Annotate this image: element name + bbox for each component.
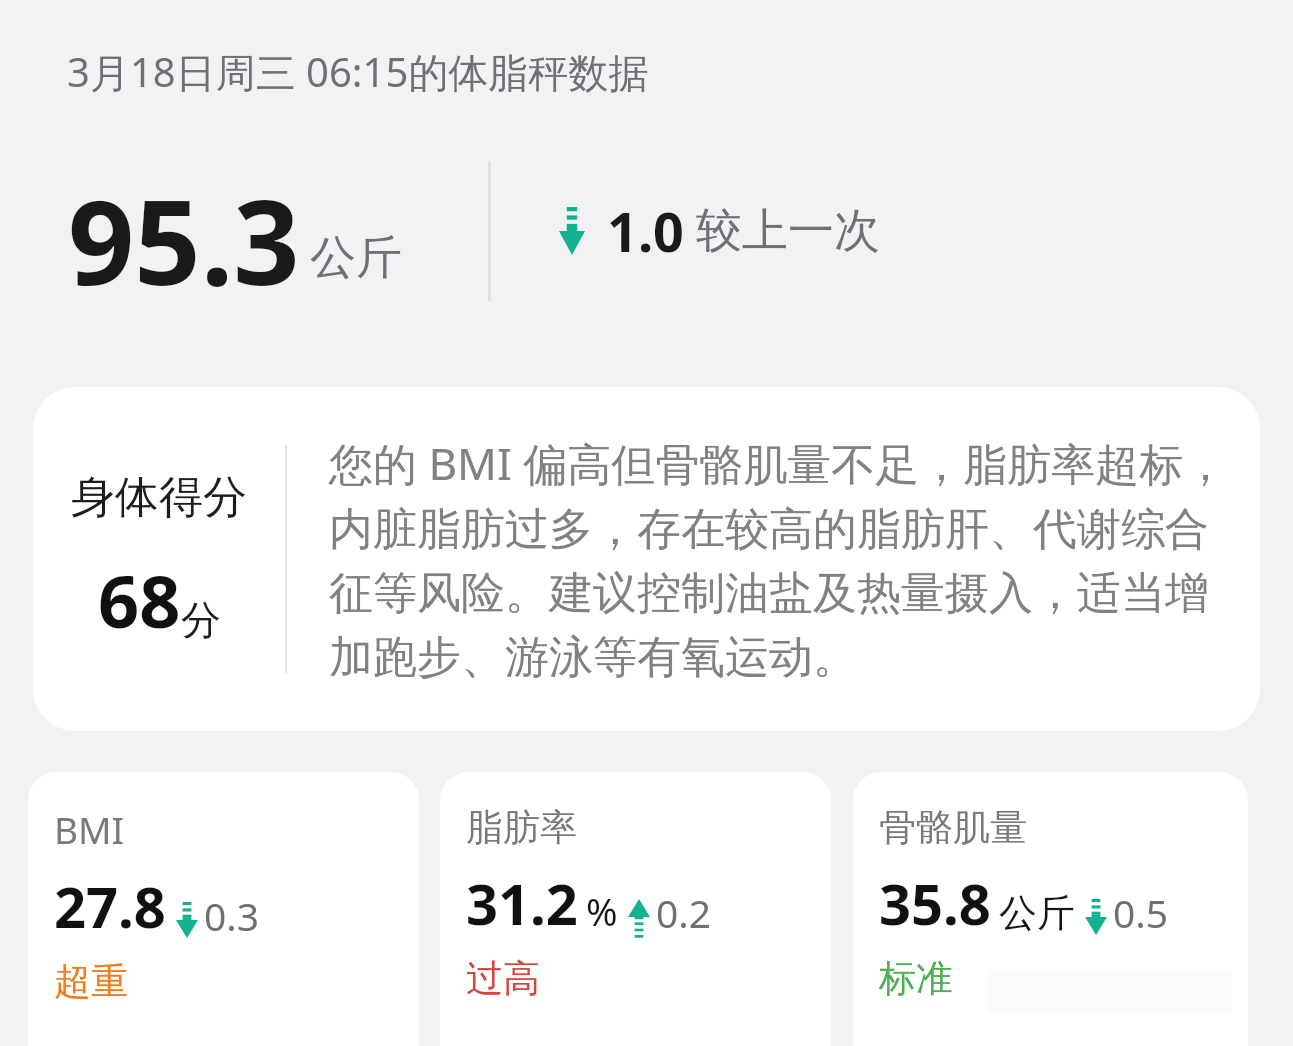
staticText: 较上一次 [696, 202, 880, 260]
staticText: 超重 [54, 958, 128, 1005]
staticText: 68 [98, 551, 181, 649]
staticText: 3月18日周三 06:15的体脂秤数据 [67, 44, 649, 99]
staticText: 0.5 [1113, 886, 1169, 939]
staticText: 公斤 [310, 229, 402, 287]
staticText: 骨骼肌量 [879, 804, 1027, 851]
staticText: 身体得分 [71, 470, 247, 525]
staticText: 35.8 [879, 865, 991, 941]
button[interactable]: 95.3 [68, 161, 402, 301]
staticText: % [586, 885, 618, 937]
staticText: 标准 [879, 955, 953, 1002]
staticText: 脂肪率 [466, 804, 577, 851]
button[interactable]: BMI [28, 772, 419, 1046]
button[interactable]: 脂肪率 [440, 772, 831, 1046]
staticText: 95.3 [68, 161, 300, 301]
button[interactable]: 1.0 [559, 194, 880, 268]
staticText: 0.2 [656, 886, 712, 939]
staticText: BMI [54, 804, 125, 854]
staticText: 公斤 [999, 889, 1075, 937]
staticText: 1.0 [607, 194, 684, 268]
staticText: 您的 BMI 偏高但骨骼肌量不足，脂肪率超标，内脏脂肪过多，存在较高的脂肪肝、代… [329, 433, 1238, 685]
staticText: 27.8 [54, 868, 166, 944]
staticText: 0.3 [204, 889, 260, 942]
staticText: 过高 [466, 955, 540, 1002]
staticText: 分 [181, 595, 221, 645]
button[interactable]: 身体得分 [33, 387, 1260, 731]
button[interactable]: 骨骼肌量 [853, 772, 1248, 1046]
staticText: 31.2 [466, 865, 578, 941]
